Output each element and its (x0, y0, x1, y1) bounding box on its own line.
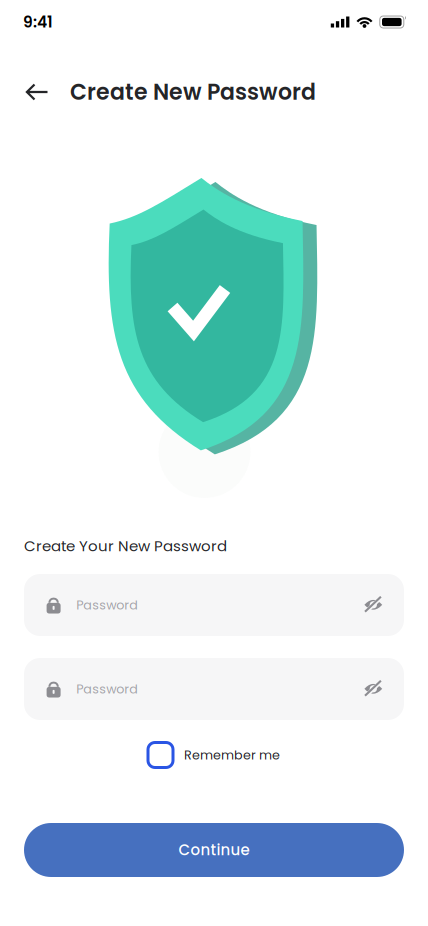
staticText: Create Your New Password (24, 535, 227, 556)
staticText: Remember me (184, 746, 280, 764)
button[interactable]: Back (15, 70, 59, 114)
staticText: Continue (178, 839, 249, 860)
staticText: Create New Password (70, 77, 316, 107)
button[interactable]: Password (24, 574, 404, 636)
button[interactable]: Remember me (148, 741, 280, 769)
staticText: 9:41 (23, 11, 53, 33)
staticText: Password (76, 596, 138, 614)
staticText: Password (76, 680, 138, 698)
button[interactable]: Create New Password (70, 77, 316, 107)
button[interactable]: Continue (24, 823, 404, 877)
button[interactable]: Password (24, 658, 404, 720)
